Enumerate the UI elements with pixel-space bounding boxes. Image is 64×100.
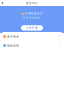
staticText: 立即开通: [26, 26, 38, 29]
button[interactable]: 隐私设置: [1, 41, 62, 50]
staticText: 安全中心: [26, 1, 38, 5]
staticText: 账号安全: [7, 35, 19, 38]
button[interactable]: Back: [0, 0, 6, 6]
staticText: 尊享多项特权: [23, 16, 41, 19]
button[interactable]: 立即开通: [21, 25, 43, 30]
staticText: 开通超级会员: [25, 12, 43, 15]
button[interactable]: 账号安全: [1, 32, 62, 41]
staticText: 隐私设置: [7, 44, 19, 47]
